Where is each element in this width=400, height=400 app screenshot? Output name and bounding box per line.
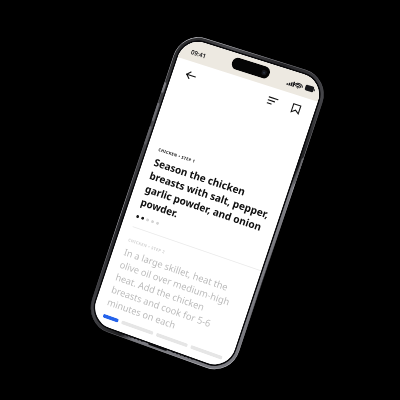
staticText: 09:41 [190, 47, 208, 60]
button[interactable]: CHICKEN • STEP 1 [125, 143, 289, 262]
button[interactable]: Bookmark [285, 98, 307, 120]
button[interactable]: Step 4 [190, 345, 223, 360]
button[interactable]: Filter [262, 90, 283, 112]
staticText: CHICKEN • STEP 2 [128, 237, 166, 254]
staticText: In a large skillet, heat the olive oil o… [106, 245, 246, 350]
button[interactable]: Current step [102, 314, 119, 323]
button[interactable]: Step 3 [155, 333, 188, 347]
staticText: CHICKEN • STEP 1 [158, 146, 196, 164]
button[interactable]: Back [180, 64, 201, 86]
button[interactable]: CHICKEN • STEP 2 [95, 233, 258, 353]
button[interactable]: Step 2 [121, 320, 154, 335]
staticText: Season the chicken breasts with salt, pe… [139, 155, 275, 248]
